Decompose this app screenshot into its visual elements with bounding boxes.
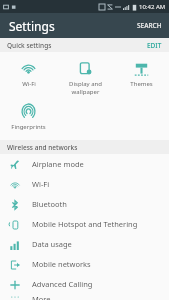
other: Data usage <box>10 240 20 250</box>
staticText: Display and wallpaper <box>69 80 102 96</box>
staticText: Advanced Calling <box>32 279 93 289</box>
other: Advanced Calling <box>10 280 20 290</box>
staticText: More <box>32 294 51 300</box>
button[interactable]: Settings <box>0 13 169 38</box>
staticText: Wi-Fi <box>22 80 36 88</box>
other: Mobile networks <box>10 260 20 270</box>
button[interactable]: Themes <box>113 58 169 91</box>
button[interactable]: Fingerprints <box>0 101 57 134</box>
other: Themes <box>134 61 149 76</box>
button[interactable]: SEARCH <box>130 16 169 35</box>
staticText: EDIT <box>147 41 162 49</box>
button[interactable]: Bluetooth <box>0 194 169 214</box>
button[interactable]: Airplane mode <box>0 154 169 174</box>
other: Wi-Fi <box>10 180 20 190</box>
button[interactable]: Data usage <box>0 234 169 254</box>
button[interactable]: EDIT <box>140 38 169 52</box>
other: Display and wallpaper <box>78 61 93 76</box>
button[interactable]: Advanced Calling <box>0 274 169 294</box>
staticText: 10:42 AM <box>139 3 166 11</box>
staticText: Quick settings <box>7 41 52 50</box>
button[interactable]: Mobile Hotspot and Tethering <box>0 214 169 234</box>
other: Bluetooth <box>10 200 20 210</box>
button[interactable]: Wi-Fi <box>0 174 169 194</box>
other: Airplane mode <box>10 160 20 170</box>
staticText: Airplane mode <box>32 159 84 169</box>
staticText: Wi-Fi <box>32 179 50 189</box>
other: Wi-Fi <box>21 61 36 76</box>
staticText: Mobile networks <box>32 259 91 269</box>
staticText: Bluetooth <box>32 199 67 209</box>
staticText: Fingerprints <box>11 123 46 131</box>
staticText: Data usage <box>32 239 72 249</box>
button[interactable]: More <box>0 294 169 300</box>
other: More <box>10 294 20 300</box>
staticText: Themes <box>130 80 153 88</box>
staticText: Wireless and networks <box>7 143 78 152</box>
staticText: Settings <box>9 18 55 34</box>
other: Mobile Hotspot and Tethering <box>10 220 20 230</box>
staticText: SEARCH <box>137 21 162 30</box>
button[interactable]: Mobile networks <box>0 254 169 274</box>
button[interactable]: Display and wallpaper <box>57 58 113 99</box>
button[interactable]: Wi-Fi <box>0 58 57 91</box>
other: Fingerprints <box>21 104 36 119</box>
staticText: Mobile Hotspot and Tethering <box>32 219 138 229</box>
